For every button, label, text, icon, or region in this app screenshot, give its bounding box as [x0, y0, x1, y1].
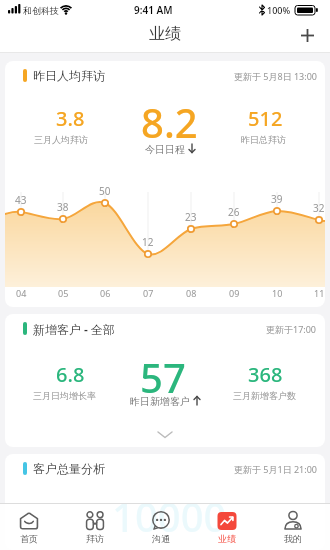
staticText: 三月新增客户数: [233, 390, 296, 401]
button[interactable]: 首页: [0, 503, 62, 550]
staticText: 首页: [20, 533, 38, 544]
staticText: 昨日人均拜访: [33, 68, 105, 83]
button[interactable]: 新增客户 - 全部: [5, 314, 325, 447]
staticText: 05: [58, 287, 69, 299]
staticText: 512: [248, 105, 283, 132]
button[interactable]: [293, 21, 321, 49]
staticText: 新增客户 - 全部: [33, 321, 116, 337]
staticText: 12: [142, 235, 154, 249]
staticText: 我的: [284, 533, 302, 544]
button[interactable]: 客户总量分析: [5, 454, 325, 550]
staticText: 6.8: [56, 361, 85, 388]
staticText: 100%: [267, 4, 291, 16]
staticText: 26: [228, 205, 240, 219]
staticText: 10: [272, 287, 283, 299]
staticText: 三月人均拜访: [34, 134, 88, 145]
staticText: 50: [99, 184, 111, 198]
staticText: 07: [143, 287, 154, 299]
staticText: 更新于17:00: [266, 323, 317, 335]
staticText: 沟通: [152, 533, 170, 544]
staticText: 拜访: [86, 533, 104, 544]
staticText: 今日日程: [145, 142, 188, 156]
staticText: 57: [140, 350, 186, 394]
staticText: 和创科技: [23, 5, 59, 16]
staticText: 368: [248, 361, 283, 388]
staticText: 更新于 5月1日 21:00: [234, 463, 317, 475]
staticText: 06: [100, 287, 111, 299]
staticText: 昨日总拜访: [241, 134, 286, 145]
staticText: 08: [186, 287, 197, 299]
staticText: 10000: [112, 489, 227, 533]
staticText: 更新于 5月8日 13:00: [234, 70, 317, 82]
staticText: 9:41 AM: [134, 3, 173, 17]
staticText: 32: [313, 201, 325, 215]
button[interactable]: 昨日人均拜访: [5, 61, 325, 307]
staticText: 业绩: [149, 24, 181, 44]
staticText: 11: [314, 287, 325, 299]
staticText: 昨日新增客户: [130, 394, 193, 408]
staticText: 业绩: [218, 533, 236, 544]
button[interactable]: 拜访: [62, 503, 128, 550]
button[interactable]: 沟通: [128, 503, 194, 550]
staticText: 23: [185, 210, 197, 224]
staticText: 38: [57, 200, 69, 214]
staticText: 3.8: [56, 105, 85, 132]
staticText: 39: [271, 192, 283, 206]
staticText: 客户总量分析: [33, 461, 105, 476]
button[interactable]: 我的: [260, 503, 326, 550]
staticText: 43: [15, 193, 27, 207]
staticText: 三月日均增长率: [33, 390, 96, 401]
button[interactable]: 业绩: [194, 503, 260, 550]
staticText: 8.2: [141, 95, 198, 139]
staticText: 09: [229, 287, 240, 299]
staticText: 04: [16, 287, 27, 299]
